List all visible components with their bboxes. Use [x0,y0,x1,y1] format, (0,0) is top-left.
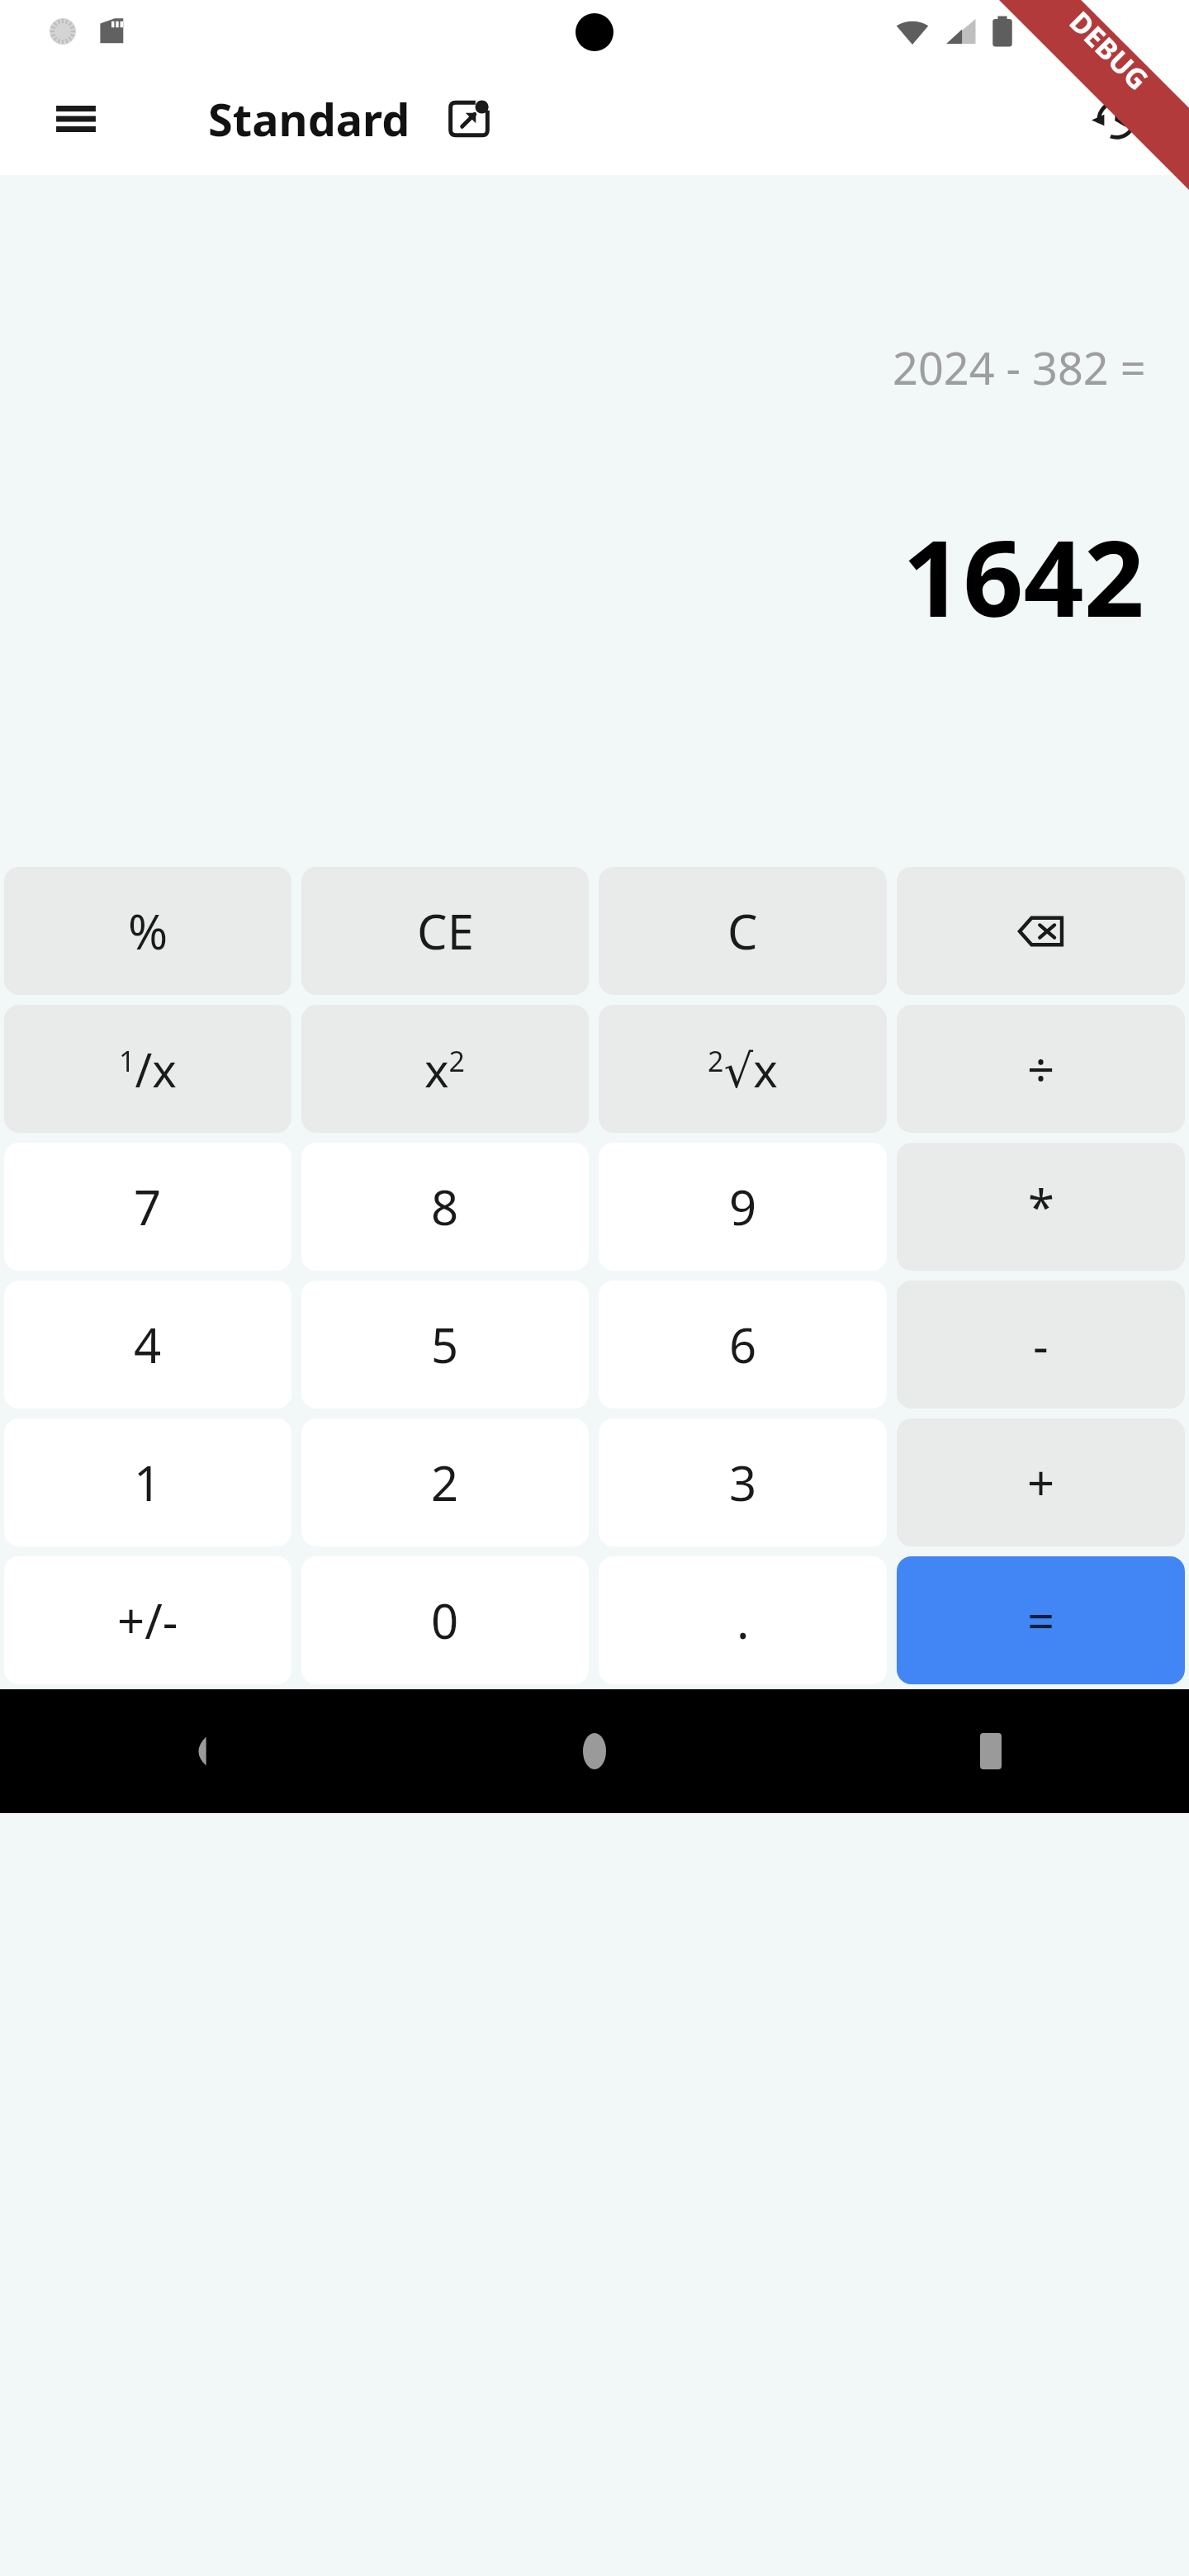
button[interactable]: C [599,867,887,995]
button[interactable]: 6 [599,1281,887,1409]
button[interactable]: 7 [4,1143,291,1271]
button[interactable]: 0 [301,1556,589,1684]
staticText: 0 [431,1588,459,1653]
staticText: + [1027,1450,1055,1515]
staticText: 9 [729,1174,757,1239]
button[interactable]: Open in floating window [438,88,500,149]
staticText: 1642 [902,504,1144,647]
button[interactable]: 4 [4,1281,291,1409]
staticText: 1 [134,1450,162,1515]
button[interactable]: square root of x [599,1005,887,1133]
button[interactable]: ÷ [897,1005,1185,1133]
button[interactable]: 1 [4,1418,291,1546]
button[interactable]: 8 [301,1143,589,1271]
button[interactable]: Home [396,1689,793,1813]
button[interactable]: * [897,1143,1185,1271]
staticText: 8 [431,1174,459,1239]
staticText: CE [417,898,474,964]
button[interactable]: Back [0,1689,396,1813]
staticText: 2 [431,1450,459,1515]
staticText: 5 [431,1312,459,1377]
staticText: 4 [134,1312,162,1377]
button[interactable]: Recent apps [793,1689,1189,1813]
staticText: +/- [117,1588,178,1653]
button[interactable]: = [897,1556,1185,1684]
staticText: - [1033,1312,1049,1377]
button[interactable]: 1 over x [4,1005,291,1133]
button[interactable]: +/- [4,1556,291,1684]
staticText: * [1028,1174,1054,1239]
staticText: C [727,898,758,964]
staticText: ÷ [1027,1036,1055,1101]
button[interactable]: CE [301,867,589,995]
staticText: 3:14 [1044,10,1106,53]
staticText: DEBUG [1062,3,1157,98]
button[interactable]: 5 [301,1281,589,1409]
staticText: x2 [424,1038,466,1101]
button[interactable]: - [897,1281,1185,1409]
button[interactable]: 9 [599,1143,887,1271]
staticText: = [1027,1588,1055,1653]
button[interactable]: History [1080,84,1149,154]
staticText: % [128,898,168,964]
staticText: 2024 - 382 = [893,337,1146,398]
button[interactable]: 3 [599,1418,887,1546]
staticText: . [737,1588,750,1653]
button[interactable]: 2 [301,1418,589,1546]
button[interactable]: . [599,1556,887,1684]
button[interactable]: Backspace [897,867,1185,995]
staticText: 2√x [708,1038,778,1101]
button[interactable]: Menu [43,86,109,152]
button[interactable]: x squared [301,1005,589,1133]
staticText: 6 [729,1312,757,1377]
button[interactable]: + [897,1418,1185,1546]
staticText: Standard [208,88,410,149]
staticText: 1/x [119,1038,177,1101]
staticText: 7 [134,1174,162,1239]
button[interactable]: % [4,867,291,995]
staticText: 3 [729,1450,757,1515]
